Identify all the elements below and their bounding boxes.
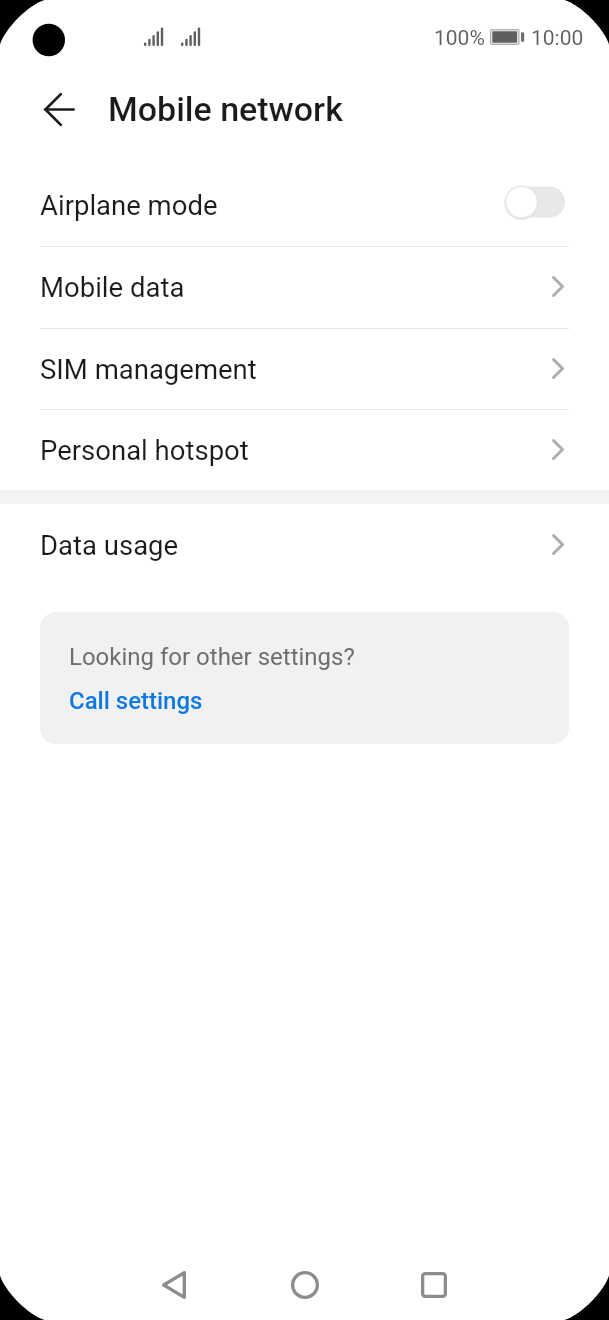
button[interactable]: Mobile data	[0, 246, 609, 327]
button[interactable]: Recent apps	[408, 1259, 460, 1311]
button[interactable]: Back	[32, 81, 88, 137]
staticText: Airplane mode	[40, 189, 218, 221]
button[interactable]: Looking for other settings?	[40, 612, 569, 744]
button[interactable]: Home	[279, 1259, 331, 1311]
button[interactable]: SIM management	[0, 328, 609, 409]
button[interactable]: Airplane mode	[0, 164, 609, 245]
staticText: Looking for other settings?	[69, 643, 355, 671]
staticText: Personal hotspot	[40, 434, 249, 466]
button[interactable]: Call settings	[69, 687, 203, 715]
staticText: 10:00	[531, 26, 584, 51]
button[interactable]: Back	[148, 1259, 200, 1311]
staticText: 100%	[434, 26, 485, 51]
button[interactable]: Data usage	[0, 504, 609, 585]
staticText: SIM management	[40, 353, 257, 385]
staticText: Mobile data	[40, 271, 185, 303]
staticText: Mobile network	[108, 89, 343, 129]
button[interactable]: Personal hotspot	[0, 409, 609, 490]
staticText: Data usage	[40, 529, 179, 561]
